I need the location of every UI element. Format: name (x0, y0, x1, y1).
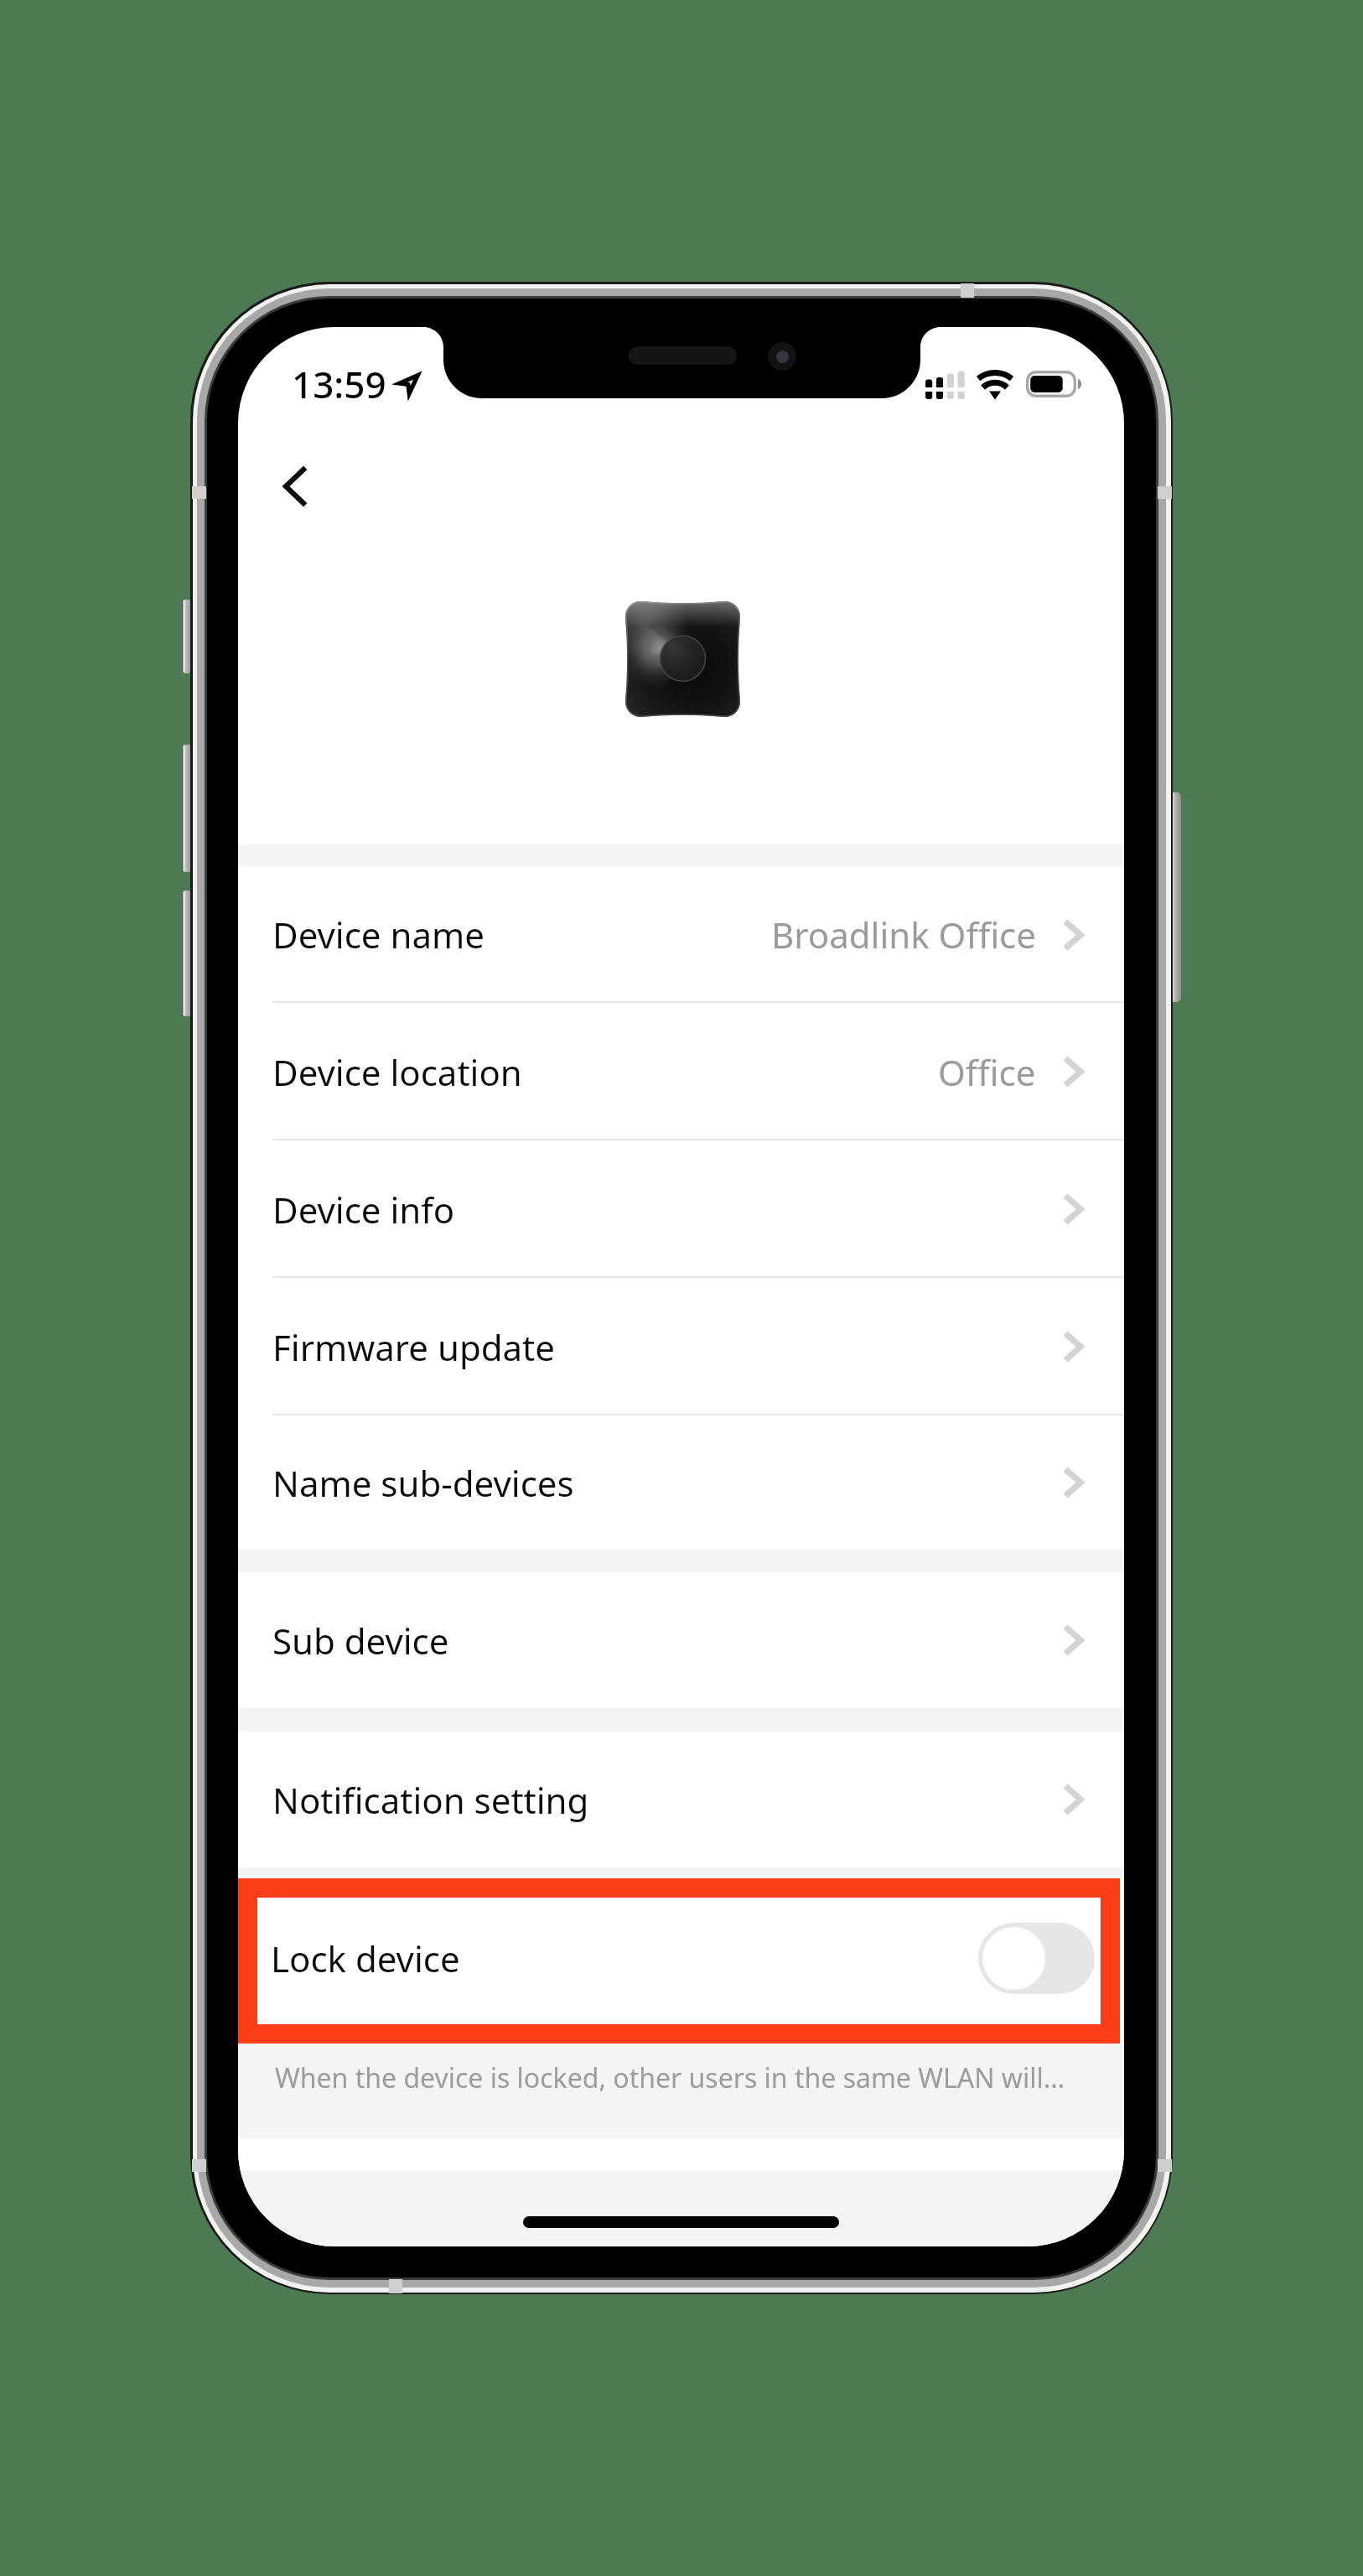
button[interactable]: Lock device (978, 1923, 1095, 1994)
staticText: Lock device (271, 1935, 460, 1982)
staticText: Firmware update (272, 1323, 555, 1371)
staticText: When the device is locked, other users i… (275, 2059, 1065, 2096)
button[interactable]: Device name (238, 866, 1124, 1003)
button[interactable]: Lock device (257, 1898, 1101, 2024)
button[interactable]: Device info (238, 1140, 1124, 1278)
button[interactable]: Firmware update (238, 1278, 1124, 1415)
button[interactable]: Device location (238, 1003, 1124, 1140)
staticText: Sub device (272, 1617, 449, 1665)
staticText: Device location (272, 1048, 522, 1096)
staticText: Device name (272, 911, 485, 958)
staticText: Broadlink Office (771, 911, 1036, 958)
staticText: Office (938, 1048, 1036, 1096)
staticText: Notification setting (272, 1776, 589, 1824)
button[interactable]: Back (246, 436, 343, 537)
staticText: 13:59 (292, 359, 386, 409)
button[interactable]: Notification setting (238, 1732, 1124, 1867)
staticText: Name sub-devices (272, 1459, 574, 1507)
button[interactable]: Sub device (238, 1572, 1124, 1708)
button[interactable]: Name sub-devices (238, 1415, 1124, 1550)
staticText: Device info (272, 1186, 455, 1233)
